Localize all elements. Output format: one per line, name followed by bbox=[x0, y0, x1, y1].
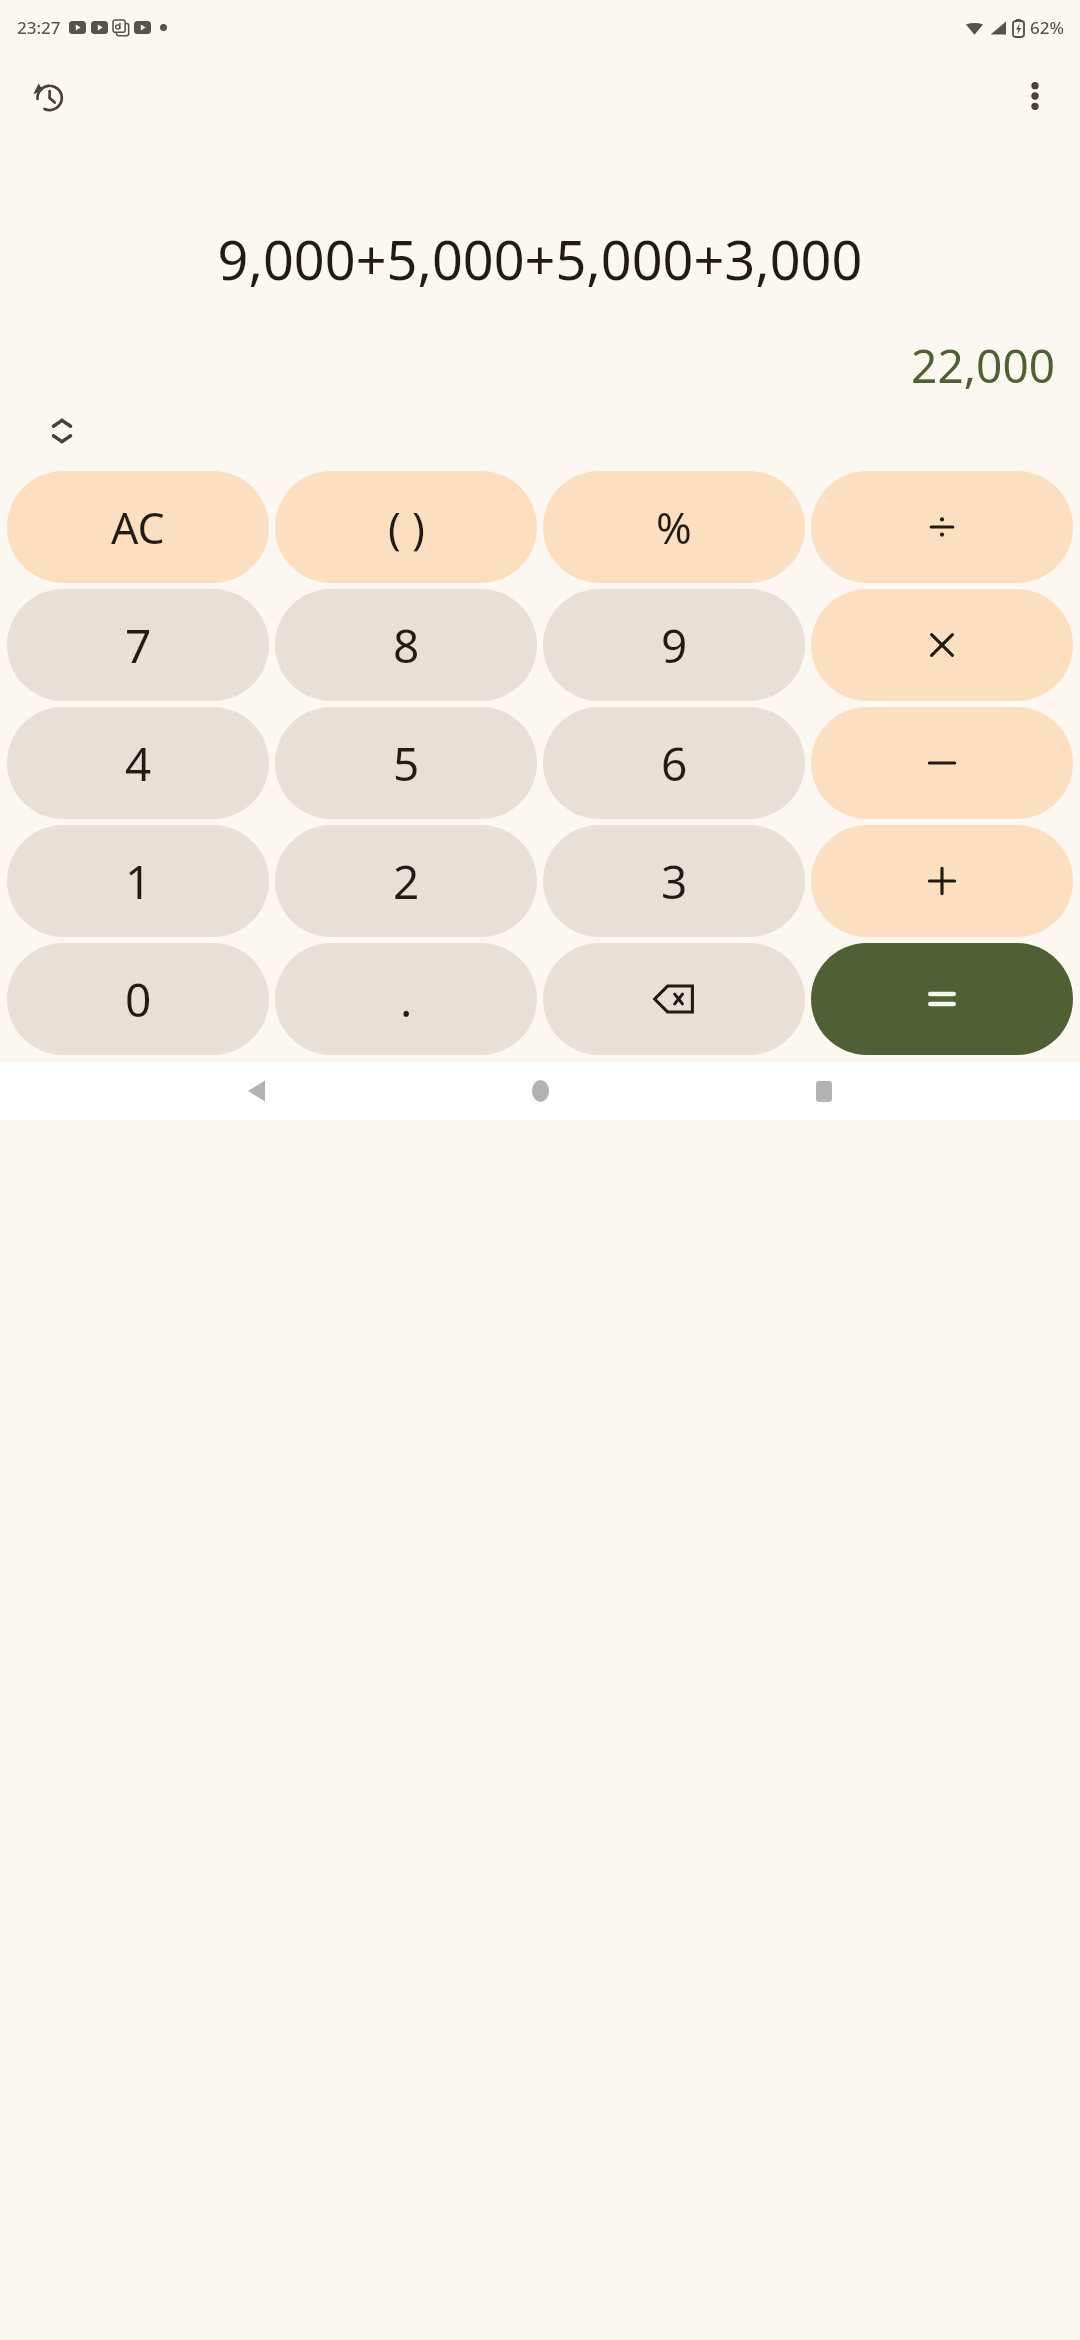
staticText: 62% bbox=[1030, 16, 1064, 39]
button[interactable]: Expand history bbox=[32, 409, 92, 453]
button[interactable]: Recents bbox=[796, 1063, 852, 1119]
button[interactable]: % bbox=[543, 471, 805, 583]
staticText: 8 bbox=[393, 614, 420, 677]
staticText: 4 bbox=[125, 732, 152, 795]
staticText: AC bbox=[111, 498, 165, 557]
button[interactable]: Backspace bbox=[543, 943, 805, 1055]
button[interactable]: 3 bbox=[543, 825, 805, 937]
staticText: 5 bbox=[393, 732, 420, 795]
staticText: 0 bbox=[125, 968, 152, 1031]
staticText: 9 bbox=[661, 614, 688, 677]
staticText: 3 bbox=[661, 850, 688, 913]
staticText: 7 bbox=[125, 614, 152, 677]
staticText: . bbox=[400, 968, 413, 1031]
button[interactable]: More options bbox=[1006, 67, 1064, 125]
button[interactable]: History bbox=[20, 67, 78, 125]
staticText: 22,000 bbox=[0, 334, 1055, 397]
button[interactable]: 2 bbox=[275, 825, 537, 937]
staticText: 23:27 bbox=[17, 16, 61, 39]
button[interactable]: Multiply bbox=[811, 589, 1073, 701]
button[interactable]: 8 bbox=[275, 589, 537, 701]
button[interactable]: Back bbox=[228, 1063, 284, 1119]
button[interactable]: AC bbox=[7, 471, 269, 583]
staticText: 6 bbox=[661, 732, 688, 795]
button[interactable]: Equals bbox=[811, 943, 1073, 1055]
staticText: 9,000+5,000+5,000+3,000 bbox=[0, 222, 1080, 296]
staticText: % bbox=[656, 498, 692, 557]
button[interactable]: 4 bbox=[7, 707, 269, 819]
button[interactable]: . bbox=[275, 943, 537, 1055]
button[interactable]: Home bbox=[512, 1063, 568, 1119]
button[interactable]: Minus bbox=[811, 707, 1073, 819]
button[interactable]: 5 bbox=[275, 707, 537, 819]
staticText: ( ) bbox=[388, 498, 425, 557]
button[interactable]: Plus bbox=[811, 825, 1073, 937]
button[interactable]: 1 bbox=[7, 825, 269, 937]
button[interactable]: 0 bbox=[7, 943, 269, 1055]
button[interactable]: 7 bbox=[7, 589, 269, 701]
button[interactable]: 9 bbox=[543, 589, 805, 701]
staticText: 2 bbox=[393, 850, 420, 913]
button[interactable]: 6 bbox=[543, 707, 805, 819]
staticText: 1 bbox=[125, 850, 152, 913]
button[interactable]: ( ) bbox=[275, 471, 537, 583]
button[interactable]: Divide bbox=[811, 471, 1073, 583]
